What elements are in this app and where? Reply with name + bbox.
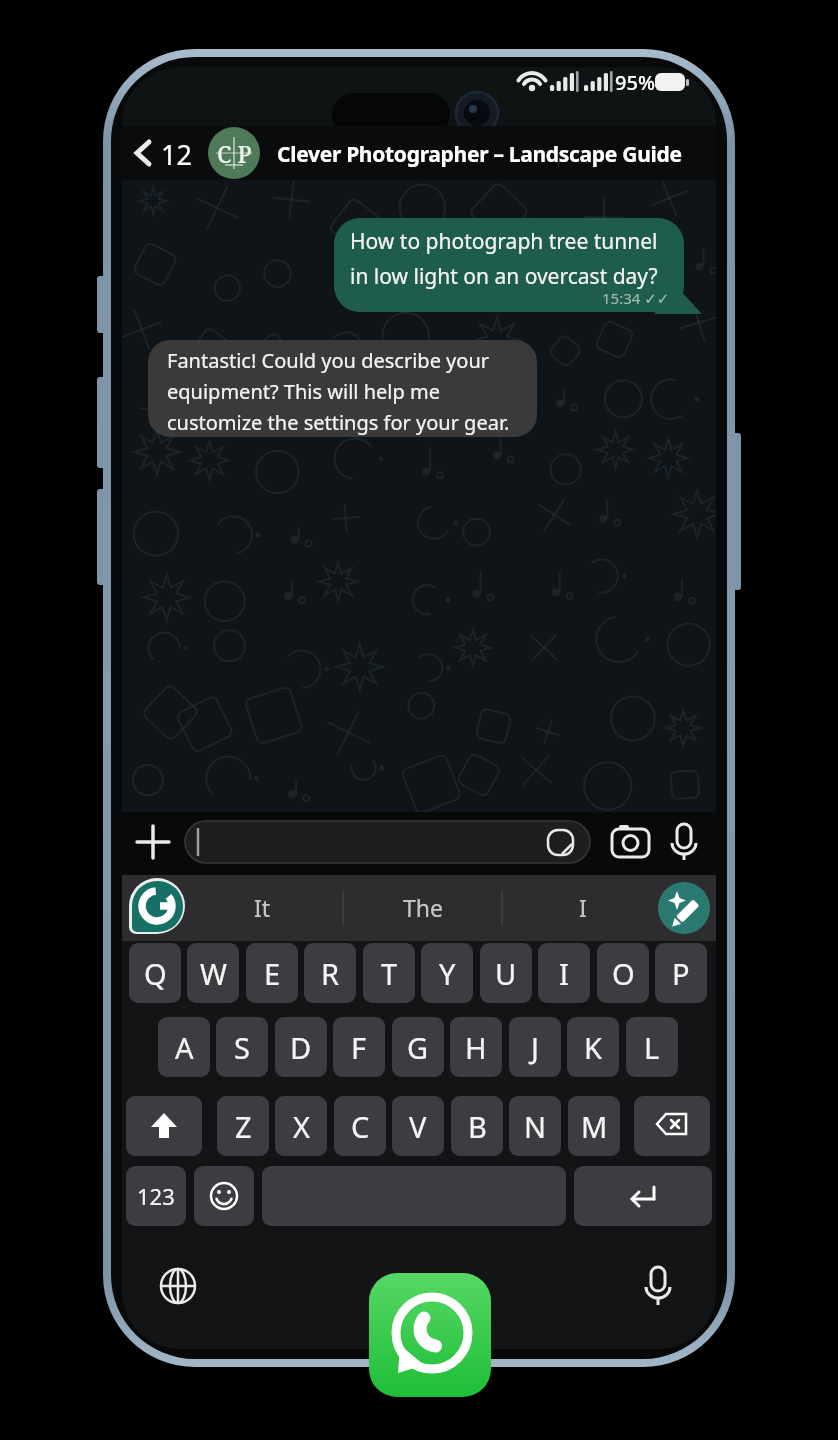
staticText: D (290, 1028, 312, 1067)
staticText: M (581, 1107, 608, 1146)
button[interactable] (662, 821, 706, 863)
button[interactable]: K (567, 1017, 619, 1077)
button[interactable]: G (392, 1017, 444, 1077)
button[interactable]: 12 (122, 126, 716, 180)
button[interactable]: O (597, 943, 649, 1003)
staticText: K (584, 1028, 602, 1067)
button[interactable] (634, 1096, 710, 1156)
staticText: U (495, 954, 517, 993)
button[interactable] (126, 130, 190, 176)
button[interactable]: X (275, 1096, 327, 1156)
button[interactable]: H (450, 1017, 502, 1077)
button[interactable]: 123 (126, 1166, 186, 1226)
staticText: 12 (161, 136, 192, 173)
button[interactable]: Fantastic! Could you describe your equip… (148, 340, 537, 437)
staticText: How to photograph tree tunnel in low lig… (350, 227, 658, 291)
staticText: C (351, 1107, 370, 1146)
staticText: C P (217, 138, 252, 169)
button[interactable]: E (246, 943, 298, 1003)
staticText: O (612, 954, 635, 993)
button[interactable] (574, 1166, 712, 1226)
staticText: X (293, 1107, 310, 1146)
button[interactable]: C (334, 1096, 386, 1156)
staticText: 15:34 ✓✓ (602, 288, 670, 308)
staticText: T (381, 954, 398, 993)
button[interactable]: Q (129, 943, 181, 1003)
button[interactable]: A (158, 1017, 210, 1077)
staticText: E (264, 954, 281, 993)
staticText: Z (235, 1107, 252, 1146)
staticText: I (559, 954, 569, 993)
button[interactable]: W (187, 943, 239, 1003)
staticText: 123 (137, 1181, 175, 1211)
staticText: S (234, 1028, 250, 1067)
button[interactable] (129, 878, 185, 934)
button[interactable] (606, 821, 654, 863)
staticText: J (531, 1028, 539, 1067)
button[interactable]: R (304, 943, 356, 1003)
button[interactable]: U (480, 943, 532, 1003)
button[interactable]: L (626, 1017, 678, 1077)
button[interactable]: J (509, 1017, 561, 1077)
button[interactable]: P (655, 943, 707, 1003)
button[interactable]: I (579, 892, 587, 923)
button[interactable]: Y (421, 943, 473, 1003)
button[interactable]: B (451, 1096, 503, 1156)
button[interactable]: D (275, 1017, 327, 1077)
staticText: Fantastic! Could you describe your equip… (167, 347, 510, 436)
staticText: L (644, 1028, 660, 1067)
staticText: Q (144, 954, 167, 993)
staticText: V (409, 1107, 427, 1146)
button[interactable] (194, 1166, 254, 1226)
staticText: B (468, 1107, 487, 1146)
staticText: W (200, 954, 227, 993)
button[interactable]: V (392, 1096, 444, 1156)
staticText: H (465, 1028, 487, 1067)
button[interactable] (152, 1260, 204, 1312)
button[interactable]: Z (217, 1096, 269, 1156)
button[interactable]: T (363, 943, 415, 1003)
staticText: 95% (615, 69, 655, 96)
button[interactable]: M (568, 1096, 620, 1156)
button[interactable]: S (216, 1017, 268, 1077)
button[interactable]: N (509, 1096, 561, 1156)
button[interactable]: The (403, 892, 443, 923)
button[interactable]: F (333, 1017, 385, 1077)
button[interactable] (658, 882, 710, 934)
staticText: P (672, 954, 690, 993)
button[interactable]: I (538, 943, 590, 1003)
staticText: R (321, 954, 340, 993)
staticText: G (407, 1028, 429, 1067)
staticText: Clever Photographer – Landscape Guide (277, 140, 682, 169)
button[interactable] (632, 1260, 684, 1312)
button[interactable] (369, 1273, 491, 1397)
button[interactable] (132, 821, 174, 863)
staticText: A (175, 1028, 194, 1067)
button[interactable] (185, 821, 590, 863)
button[interactable]: It (254, 892, 271, 923)
staticText: F (351, 1028, 367, 1067)
staticText: Y (439, 954, 456, 993)
staticText: N (524, 1107, 547, 1146)
button[interactable]: How to photograph tree tunnel in low lig… (334, 218, 684, 312)
button[interactable] (126, 1096, 202, 1156)
